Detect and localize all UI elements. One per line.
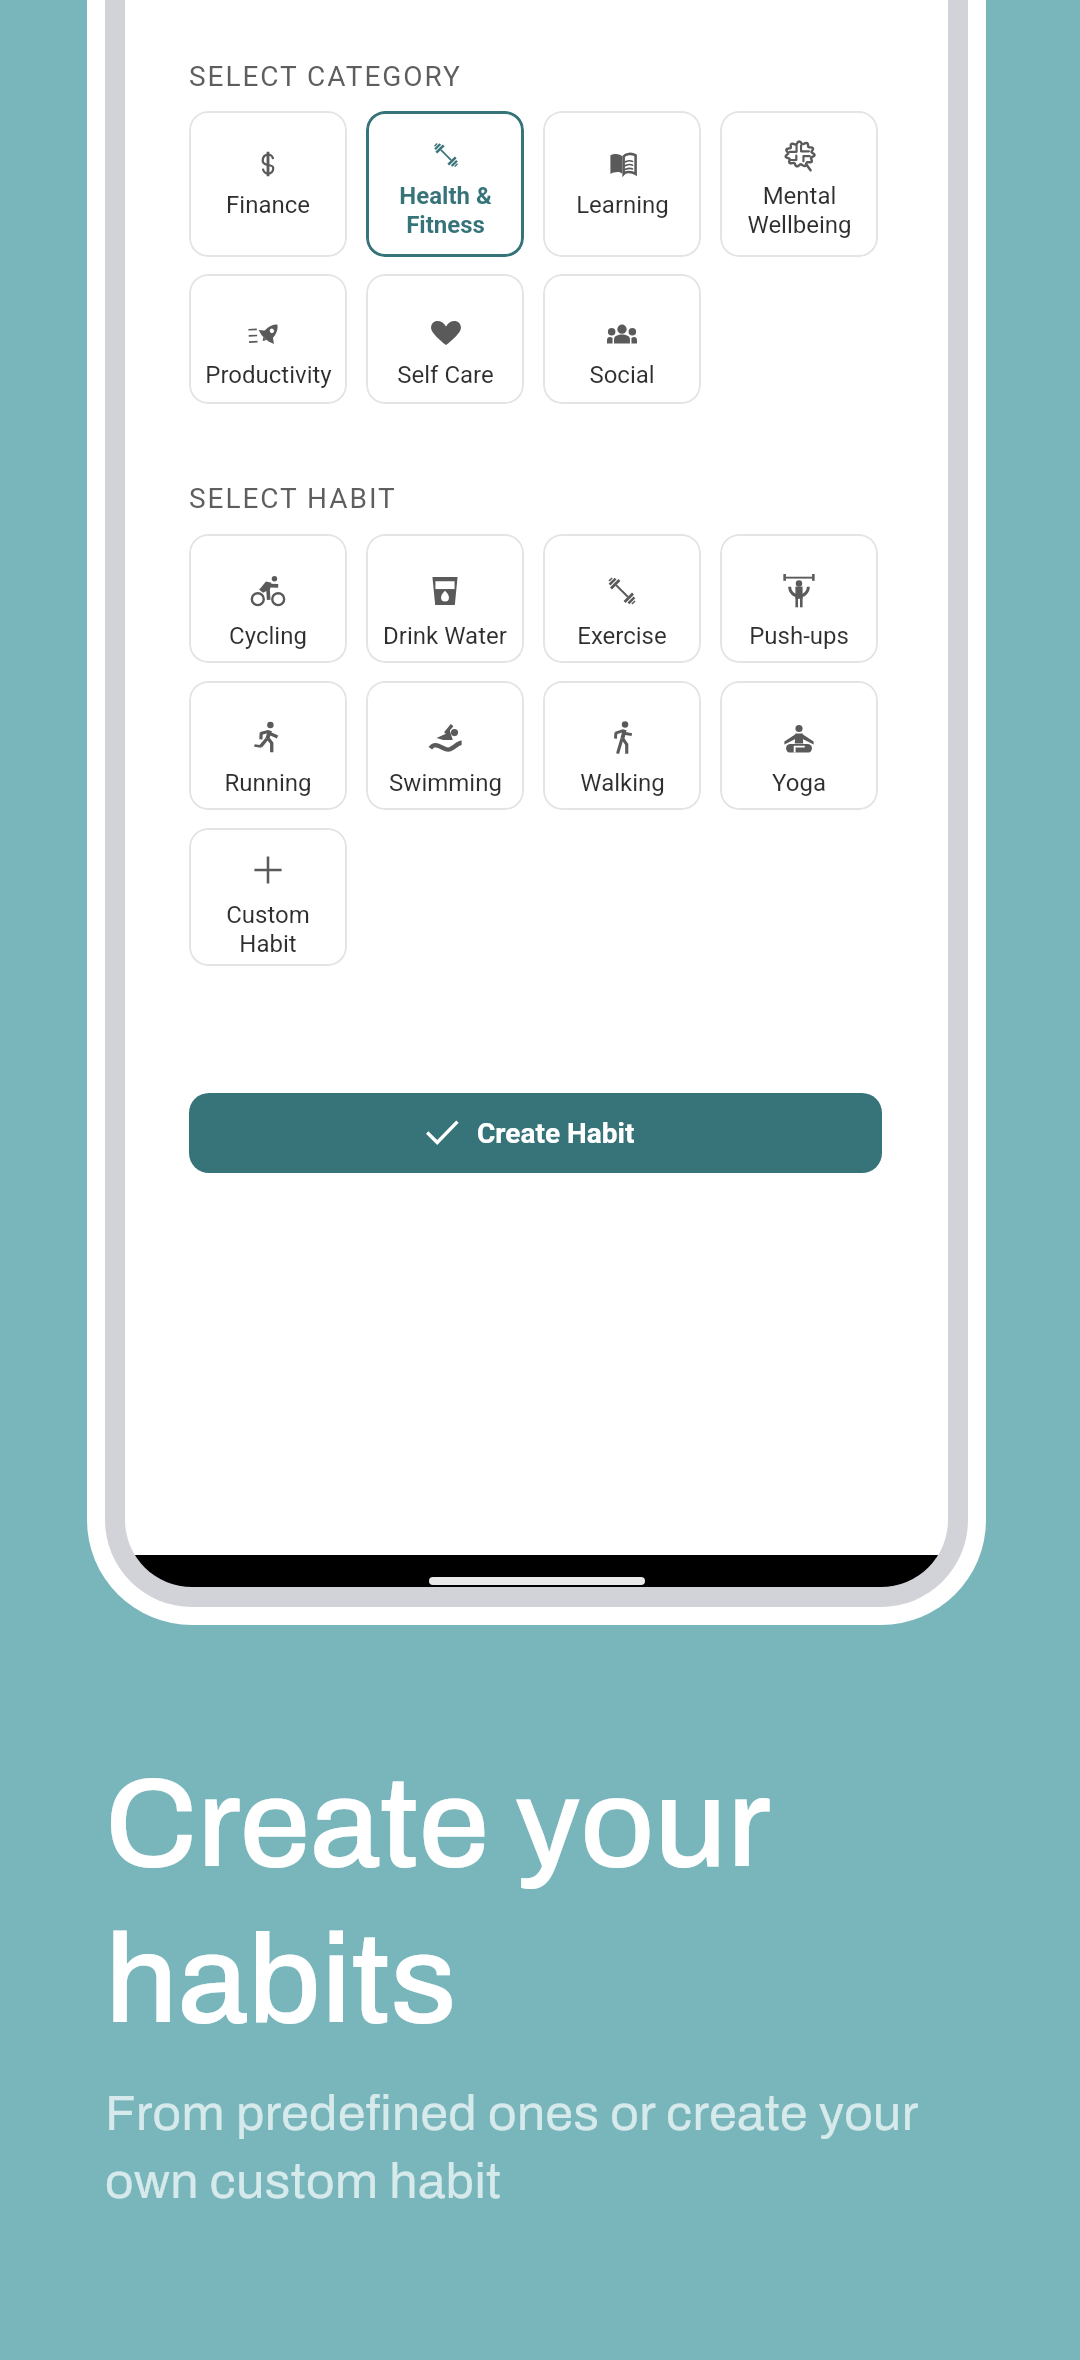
- other: Running: [251, 721, 285, 755]
- staticText: Drink Water: [383, 622, 507, 650]
- staticText: Yoga: [772, 769, 826, 797]
- staticText: Finance: [226, 191, 310, 219]
- other: Productivity: [254, 319, 284, 349]
- staticText: From predefined ones or create your own …: [105, 2086, 919, 2208]
- button[interactable]: Social: [543, 274, 701, 404]
- staticText: Custom Habit: [226, 901, 310, 958]
- button[interactable]: Yoga: [720, 681, 878, 810]
- other: Confirm: [425, 1116, 459, 1150]
- staticText: Social: [589, 361, 655, 389]
- button[interactable]: Custom Habit: [189, 828, 347, 966]
- staticText: Cycling: [229, 622, 307, 650]
- staticText: Learning: [576, 191, 669, 219]
- other: Custom Habit: [251, 853, 285, 887]
- other: Exercise: [605, 574, 639, 608]
- other: Self Care: [431, 319, 461, 349]
- staticText: Running: [224, 769, 312, 797]
- button[interactable]: Cycling: [189, 534, 347, 663]
- staticText: Walking: [580, 769, 665, 797]
- button[interactable]: Learning: [543, 111, 701, 257]
- staticText: SELECT HABIT: [189, 482, 397, 515]
- button[interactable]: Swimming: [366, 681, 524, 810]
- staticText: Productivity: [205, 361, 332, 389]
- other: Push-ups: [782, 574, 816, 608]
- button[interactable]: Drink Water: [366, 534, 524, 663]
- other: Learning: [608, 149, 638, 179]
- button[interactable]: Push-ups: [720, 534, 878, 663]
- other: Finance: [253, 149, 283, 179]
- button[interactable]: Self Care: [366, 274, 524, 404]
- button[interactable]: Exercise: [543, 534, 701, 663]
- staticText: SELECT CATEGORY: [189, 60, 462, 93]
- button[interactable]: Walking: [543, 681, 701, 810]
- staticText: Create Habit: [477, 1117, 635, 1150]
- other: Mental Wellbeing: [785, 140, 815, 170]
- staticText: Swimming: [389, 769, 502, 797]
- other: Health & Fitness: [431, 140, 461, 170]
- button[interactable]: Mental Wellbeing: [720, 111, 878, 257]
- staticText: Push-ups: [749, 622, 849, 650]
- button[interactable]: Finance: [189, 111, 347, 257]
- staticText: Self Care: [397, 361, 494, 389]
- staticText: Health & Fitness: [399, 182, 492, 239]
- other: Cycling: [251, 574, 285, 608]
- other: Walking: [606, 721, 640, 755]
- staticText: Exercise: [577, 622, 667, 650]
- other: Swimming: [429, 721, 463, 755]
- other: Yoga: [782, 721, 816, 755]
- other: Drink Water: [428, 574, 462, 608]
- button[interactable]: Productivity: [189, 274, 347, 404]
- staticText: Mental Wellbeing: [747, 182, 852, 239]
- button[interactable]: Confirm: [189, 1093, 882, 1173]
- other: Social: [607, 319, 637, 349]
- button[interactable]: Running: [189, 681, 347, 810]
- button[interactable]: Health & Fitness: [366, 111, 524, 257]
- staticText: Create your habits: [105, 1754, 771, 2048]
